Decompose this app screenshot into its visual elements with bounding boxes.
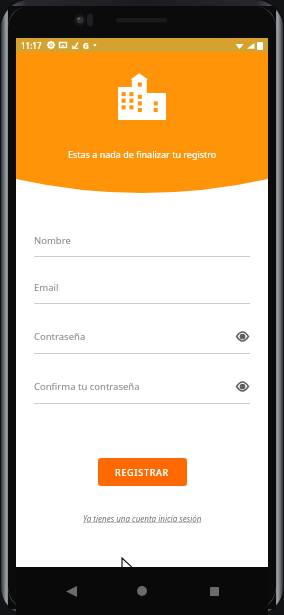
button[interactable]: Confirma tu contraseña bbox=[34, 378, 250, 428]
button[interactable]: Nombre bbox=[34, 234, 250, 281]
staticText: Confirma tu contraseña bbox=[34, 380, 140, 393]
staticText: G bbox=[83, 40, 89, 51]
staticText: Ya tienes una cuenta inicia sesión bbox=[83, 513, 202, 524]
staticText: Nombre bbox=[34, 234, 71, 247]
staticText: Estas a nada de finalizar tu registro bbox=[68, 148, 217, 160]
button[interactable]: Mostrar contraseña bbox=[234, 328, 250, 344]
button[interactable]: Email bbox=[34, 281, 250, 328]
button[interactable]: Home bbox=[125, 574, 159, 608]
staticText: 11:17 bbox=[21, 40, 42, 51]
button[interactable]: Ya tienes una cuenta inicia sesión bbox=[79, 509, 206, 528]
button[interactable]: Contraseña bbox=[34, 328, 250, 378]
button[interactable]: REGISTRAR bbox=[98, 458, 187, 486]
button[interactable]: Recents bbox=[197, 574, 231, 608]
staticText: REGISTRAR bbox=[115, 466, 170, 478]
staticText: Email bbox=[34, 281, 59, 294]
button[interactable]: Mostrar contraseña bbox=[234, 378, 250, 394]
button[interactable]: Back bbox=[54, 574, 88, 608]
staticText: Contraseña bbox=[34, 330, 86, 343]
